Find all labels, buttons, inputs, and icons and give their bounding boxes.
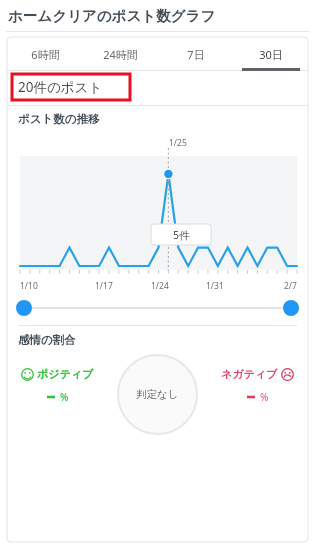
staticText: ポスト数の推移 [18, 112, 100, 126]
staticText: ネガティブ [221, 367, 278, 381]
staticText: 1/17 [95, 280, 113, 292]
staticText: 6時間 [31, 47, 60, 62]
staticText: % [260, 390, 269, 404]
staticText: 5件 [173, 228, 190, 242]
staticText: 24時間 [103, 47, 138, 62]
button[interactable]: 6時間 [7, 37, 83, 71]
button[interactable]: 24時間 [83, 37, 158, 71]
staticText: 判定なし [136, 388, 179, 401]
staticText: 1/25 [169, 137, 187, 149]
button[interactable]: 30日 [233, 37, 308, 71]
staticText: ホームクリアのポスト数グラフ [8, 7, 216, 25]
staticText: 感情の割合 [18, 333, 76, 347]
staticText: % [60, 390, 69, 404]
staticText: 7日 [187, 47, 205, 62]
staticText: ポジティブ [37, 367, 94, 381]
button[interactable]: 7日 [158, 37, 233, 71]
staticText: 1/10 [20, 280, 38, 292]
staticText: 2/7 [284, 280, 297, 292]
staticText: 30日 [259, 47, 283, 62]
staticText: 1/31 [206, 280, 224, 292]
button[interactable]: Date range slider [7, 295, 308, 321]
staticText: 20件のポスト [18, 78, 103, 96]
staticText: 1/24 [151, 280, 169, 292]
